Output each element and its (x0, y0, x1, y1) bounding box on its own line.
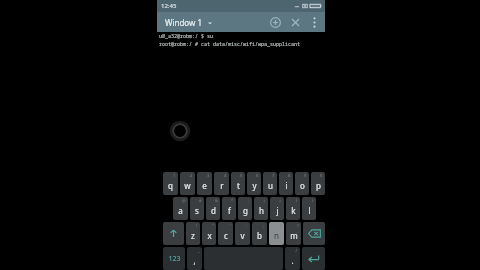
button[interactable]: / (269, 222, 284, 245)
staticText: & (215, 198, 218, 203)
button[interactable]: 5 (231, 172, 245, 195)
staticText: 2 (190, 173, 193, 178)
button[interactable]: Backspace (303, 222, 325, 245)
staticText: : (246, 223, 248, 228)
button[interactable]: ♪ (285, 247, 300, 270)
button[interactable]: 3 (197, 172, 212, 195)
button[interactable]: Close window (285, 12, 305, 32)
staticText: . (291, 255, 294, 266)
staticText: 4 (224, 173, 227, 178)
staticText: o (300, 180, 305, 191)
staticText: , (193, 255, 196, 266)
staticText: root@robm:/ # cat data/misc/wifi/wpa_sup… (159, 41, 301, 48)
staticText: p (316, 180, 321, 191)
staticText: u (268, 180, 273, 191)
staticText: h (259, 205, 264, 216)
staticText: v (240, 230, 245, 241)
button[interactable]: ) (302, 197, 316, 220)
staticText: 6 (256, 173, 259, 178)
button[interactable]: _ (187, 247, 202, 270)
staticText: ' (230, 223, 231, 228)
staticText: a (178, 205, 183, 216)
button[interactable]: ' (218, 222, 233, 245)
staticText: @ (182, 198, 186, 203)
staticText: x (207, 230, 212, 241)
staticText: l (308, 205, 311, 216)
button[interactable]: & (206, 197, 220, 220)
button[interactable]: 0 (311, 172, 325, 195)
staticText: ♪ (295, 248, 298, 253)
staticText: Window 1 (165, 17, 202, 28)
button[interactable]: + (254, 197, 268, 220)
staticText: w (184, 180, 191, 191)
button[interactable]: New window (265, 12, 285, 32)
staticText: z (191, 230, 195, 241)
button[interactable]: - (238, 197, 252, 220)
button[interactable]: More options (305, 13, 323, 31)
button[interactable]: 123 (163, 247, 185, 270)
button[interactable]: 6 (247, 172, 261, 195)
staticText: ? (297, 223, 299, 228)
staticText: 0 (320, 173, 323, 178)
staticText: i (285, 180, 288, 191)
staticText: - (248, 198, 250, 203)
staticText: # (199, 198, 202, 203)
staticText: _ (198, 248, 200, 253)
staticText: 1 (173, 173, 176, 178)
button[interactable]: 7 (263, 172, 277, 195)
staticText: s (195, 205, 199, 216)
staticText: 5 (240, 173, 243, 178)
button[interactable]: 9 (295, 172, 309, 195)
button[interactable]: Shift (163, 222, 184, 245)
staticText: m (290, 230, 298, 241)
staticText: b (257, 230, 262, 241)
button[interactable]: 2 (180, 172, 195, 195)
staticText: y (252, 180, 257, 191)
button[interactable]: " (202, 222, 216, 245)
staticText: 8 (288, 173, 291, 178)
staticText: q (168, 180, 173, 191)
button[interactable]: ; (252, 222, 267, 245)
staticText: ( (296, 198, 298, 203)
button[interactable]: * (222, 197, 236, 220)
staticText: j (276, 205, 279, 216)
staticText: k (291, 205, 296, 216)
staticText: ; (263, 223, 265, 228)
staticText: ) (312, 198, 314, 203)
staticText: d (211, 205, 216, 216)
staticText: e (202, 180, 207, 191)
staticText: u0_a32@robm:/ $ su (159, 33, 214, 40)
button[interactable]: = (270, 197, 284, 220)
button[interactable]: # (190, 197, 204, 220)
staticText: f (228, 205, 231, 216)
button[interactable]: 1 (163, 172, 178, 195)
staticText: " (212, 223, 214, 228)
button[interactable]: Enter (302, 247, 325, 270)
button[interactable]: ( (286, 197, 300, 220)
button[interactable]: : (235, 222, 250, 245)
staticText: 12:45 (161, 2, 177, 10)
staticText: g (243, 205, 248, 216)
staticText: r (220, 180, 224, 191)
button[interactable]: 8 (279, 172, 293, 195)
staticText: 7 (272, 173, 275, 178)
staticText: c (224, 230, 228, 241)
staticText: n (274, 230, 279, 241)
staticText: + (263, 198, 266, 203)
staticText: * (231, 198, 234, 203)
button[interactable]: @ (173, 197, 188, 220)
staticText: ! (196, 223, 198, 228)
staticText: = (279, 198, 282, 203)
staticText: 123 (168, 254, 181, 264)
button[interactable]: 4 (214, 172, 229, 195)
button[interactable]: ! (186, 222, 200, 245)
staticText: 9 (304, 173, 307, 178)
button[interactable]: ? (286, 222, 301, 245)
staticText: 3 (207, 173, 210, 178)
button[interactable]: Window 1 (157, 14, 219, 31)
staticText: t (237, 180, 240, 191)
